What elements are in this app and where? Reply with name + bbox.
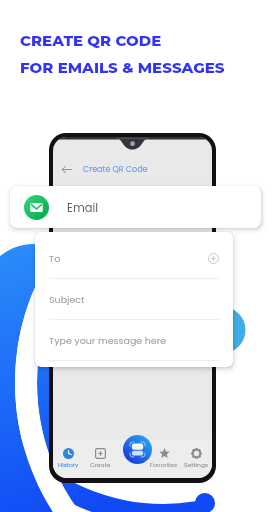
staticText: Create [90,461,111,469]
button[interactable]: Create [84,448,116,469]
button[interactable]: Add recipient [208,253,219,264]
staticText: CREATE QR CODE FOR EMAILS & MESSAGES [20,31,225,77]
staticText: Subject [49,293,85,306]
staticText: Type your message here [49,334,167,347]
button[interactable]: History [53,448,84,469]
button[interactable]: Type your message here [35,320,233,361]
button[interactable]: Email [10,186,261,228]
staticText: Create QR Code [83,164,148,175]
button[interactable]: Subject [35,279,233,320]
staticText: History [58,461,79,469]
staticText: Favorites [150,461,178,469]
staticText: To [49,252,61,265]
button[interactable]: Favorites [148,448,180,469]
staticText: Settings [184,461,209,469]
staticText: Email [67,200,99,216]
button[interactable]: Scan QR code [123,435,152,464]
button[interactable]: Back [61,164,72,175]
button[interactable]: To [35,238,233,279]
button[interactable]: Settings [180,448,212,469]
